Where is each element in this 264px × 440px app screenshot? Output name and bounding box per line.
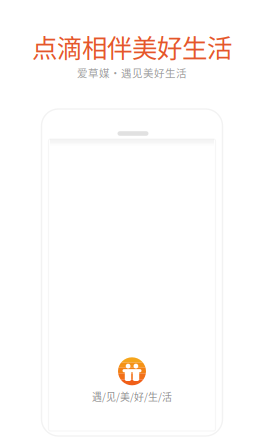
staticText: 遇/见/美/好/生/活: [92, 389, 172, 404]
staticText: 爱草媒·遇见美好生活: [77, 65, 187, 80]
staticText: 点滴相伴美好生活: [32, 28, 232, 65]
button[interactable]: 爱草媒 遇见美好生活: [84, 358, 180, 403]
